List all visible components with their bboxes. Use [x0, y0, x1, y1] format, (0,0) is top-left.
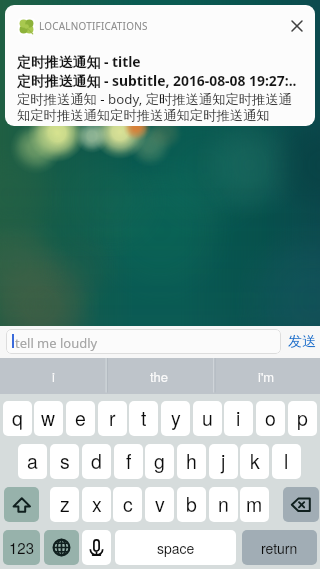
- button[interactable]: e: [66, 401, 95, 436]
- staticText: i'm: [258, 367, 275, 386]
- button[interactable]: Dictate: [82, 530, 111, 565]
- staticText: 定时推送通知 - title: [17, 52, 141, 71]
- staticText: t: [141, 404, 147, 432]
- staticText: y: [171, 404, 181, 432]
- staticText: the: [150, 367, 169, 386]
- button[interactable]: o: [256, 401, 285, 436]
- button[interactable]: r: [98, 401, 127, 436]
- staticText: f: [126, 447, 132, 475]
- staticText: v: [155, 490, 165, 518]
- button[interactable]: Backspace: [283, 487, 319, 522]
- button[interactable]: Close: [286, 15, 308, 37]
- button[interactable]: i'm: [213, 358, 320, 394]
- button[interactable]: u: [193, 401, 222, 436]
- button[interactable]: v: [145, 487, 174, 522]
- button[interactable]: n: [209, 487, 238, 522]
- staticText: e: [75, 404, 86, 432]
- button[interactable]: return: [242, 530, 317, 565]
- staticText: return: [261, 538, 298, 558]
- staticText: s: [60, 447, 70, 475]
- staticText: d: [91, 447, 102, 475]
- button[interactable]: l: [272, 444, 301, 479]
- button[interactable]: d: [82, 444, 111, 479]
- staticText: z: [60, 490, 70, 518]
- staticText: i: [236, 404, 241, 432]
- staticText: p: [297, 404, 308, 432]
- button[interactable]: h: [177, 444, 206, 479]
- button[interactable]: LOCALNOTIFICATIONS: [5, 5, 315, 126]
- staticText: i: [52, 367, 55, 386]
- button[interactable]: m: [240, 487, 269, 522]
- staticText: b: [186, 490, 197, 518]
- button[interactable]: q: [3, 401, 32, 436]
- staticText: r: [109, 404, 116, 432]
- staticText: n: [218, 490, 229, 518]
- button[interactable]: p: [288, 401, 317, 436]
- staticText: x: [92, 490, 102, 518]
- staticText: l: [284, 447, 289, 475]
- button[interactable]: t: [129, 401, 158, 436]
- staticText: a: [27, 447, 38, 475]
- staticText: h: [186, 447, 197, 475]
- staticText: 123: [9, 537, 35, 558]
- button[interactable]: w: [34, 401, 63, 436]
- button[interactable]: y: [161, 401, 190, 436]
- staticText: o: [265, 404, 276, 432]
- staticText: w: [41, 404, 56, 432]
- staticText: 定时推送通知 - subtitle, 2016-08-08 19:27:...: [17, 71, 297, 90]
- button[interactable]: i: [0, 358, 106, 394]
- staticText: space: [157, 538, 195, 558]
- button[interactable]: j: [209, 444, 238, 479]
- staticText: m: [246, 490, 263, 518]
- staticText: LOCALNOTIFICATIONS: [39, 19, 148, 32]
- staticText: j: [221, 447, 226, 475]
- button[interactable]: k: [240, 444, 269, 479]
- button[interactable]: tell me loudly: [6, 329, 281, 354]
- button[interactable]: 发送: [285, 326, 319, 358]
- button[interactable]: Shift: [4, 487, 39, 522]
- button[interactable]: f: [114, 444, 143, 479]
- button[interactable]: i: [224, 401, 253, 436]
- button[interactable]: Change keyboard: [44, 530, 79, 565]
- staticText: g: [154, 447, 165, 475]
- staticText: q: [12, 404, 23, 432]
- staticText: k: [250, 447, 260, 475]
- button[interactable]: 123: [3, 530, 40, 565]
- button[interactable]: z: [50, 487, 79, 522]
- button[interactable]: c: [113, 487, 142, 522]
- staticText: u: [202, 404, 213, 432]
- button[interactable]: s: [50, 444, 79, 479]
- button[interactable]: x: [82, 487, 111, 522]
- staticText: c: [123, 490, 133, 518]
- staticText: 定时推送通知 - body, 定时推送通知定时推送通知定时推送通知定时推送通知定…: [17, 90, 297, 124]
- button[interactable]: space: [115, 530, 236, 565]
- button[interactable]: g: [145, 444, 174, 479]
- staticText: 发送: [288, 333, 316, 351]
- button[interactable]: the: [106, 358, 213, 394]
- button[interactable]: a: [18, 444, 47, 479]
- button[interactable]: b: [177, 487, 206, 522]
- staticText: tell me loudly: [15, 334, 98, 352]
